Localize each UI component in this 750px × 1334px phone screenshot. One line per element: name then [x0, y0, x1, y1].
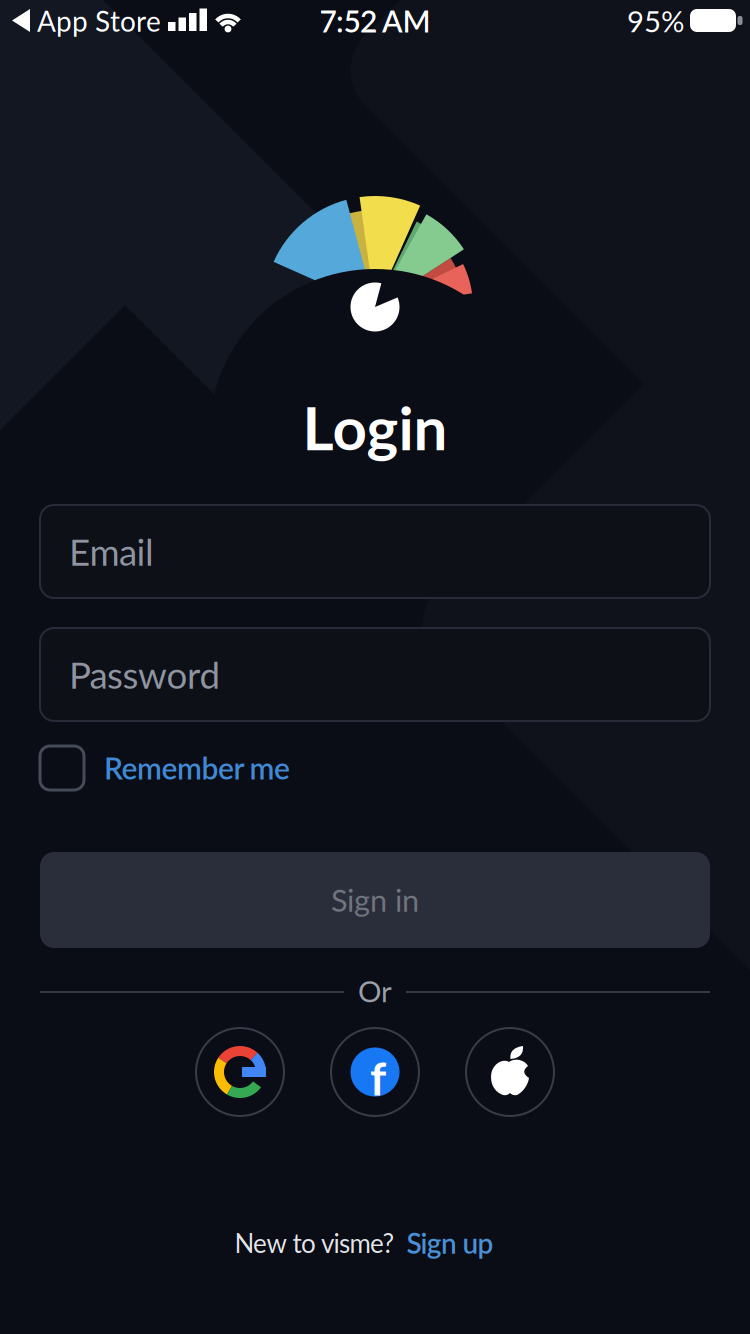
staticText: Email: [69, 529, 154, 573]
staticText: Or: [358, 973, 392, 1009]
staticText: New to visme?: [234, 1227, 394, 1259]
staticText: f: [370, 1051, 386, 1105]
staticText: Remember me: [104, 750, 290, 786]
button[interactable]: Sign up: [406, 1226, 494, 1260]
button[interactable]: Sign in: [40, 852, 710, 948]
button[interactable]: [331, 1028, 419, 1116]
button[interactable]: [466, 1028, 554, 1116]
staticText: Login: [302, 391, 447, 463]
staticText: Sign in: [331, 882, 419, 918]
button[interactable]: Email: [40, 505, 710, 598]
staticText: 7:52 AM: [319, 3, 430, 39]
button[interactable]: Remember me: [40, 746, 710, 790]
button[interactable]: [196, 1028, 284, 1116]
staticText: App Store: [37, 4, 161, 38]
staticText: Sign up: [406, 1226, 494, 1260]
staticText: Password: [69, 652, 220, 696]
button[interactable]: Password: [40, 628, 710, 721]
button[interactable]: App Store: [37, 4, 161, 38]
staticText: 95%: [627, 3, 685, 39]
